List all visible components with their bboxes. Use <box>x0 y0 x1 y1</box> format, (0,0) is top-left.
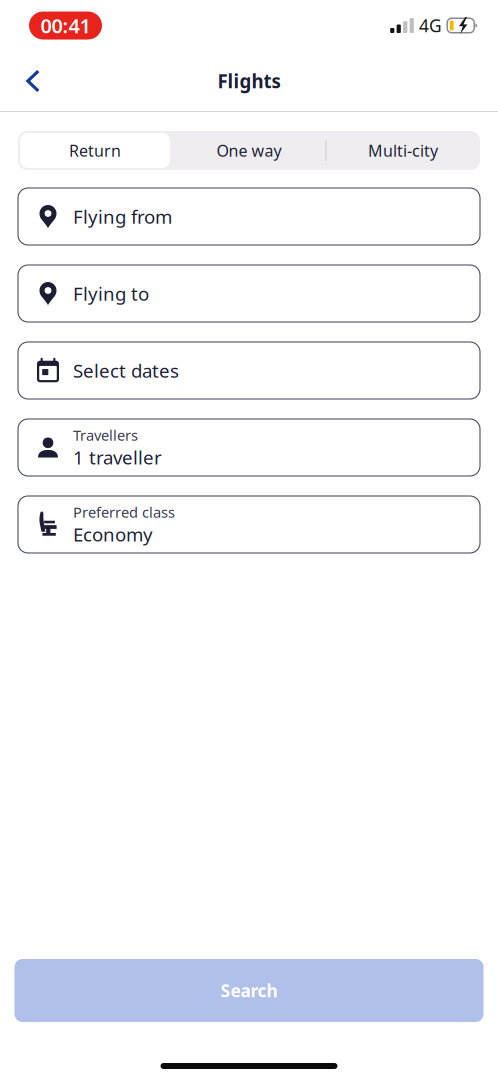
staticText: 1 traveller <box>73 445 162 470</box>
button[interactable]: Back <box>11 59 55 103</box>
button[interactable]: Preferred class <box>18 496 480 553</box>
staticText: Select dates <box>73 358 179 383</box>
staticText: 4G <box>419 14 442 37</box>
staticText: Economy <box>73 522 153 547</box>
staticText: Flying from <box>73 204 172 229</box>
staticText: Search <box>220 979 277 1002</box>
staticText: Return <box>69 140 121 161</box>
staticText: Preferred class <box>73 502 175 522</box>
button[interactable]: Flying from <box>18 188 480 245</box>
staticText: One way <box>216 140 281 161</box>
button[interactable]: Return <box>18 133 172 168</box>
staticText: Travellers <box>73 425 138 445</box>
button[interactable]: Flying to <box>18 265 480 322</box>
staticText: Multi-city <box>368 140 438 161</box>
staticText: 00:41 <box>40 12 90 39</box>
button[interactable]: Travellers <box>18 419 480 476</box>
button[interactable]: Multi-city <box>326 133 480 168</box>
button[interactable]: Search <box>14 959 483 1022</box>
staticText: Flying to <box>73 281 149 306</box>
button[interactable]: Select dates <box>18 342 480 399</box>
staticText: Flights <box>217 69 280 93</box>
button[interactable]: One way <box>172 133 326 168</box>
